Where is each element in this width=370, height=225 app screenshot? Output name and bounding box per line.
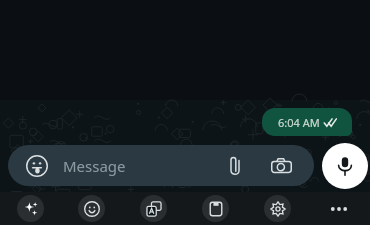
button[interactable]: Settings [246,192,308,225]
button[interactable]: 6:04 AM [262,108,352,136]
button[interactable]: Emoji and stickers [16,145,57,186]
button[interactable]: Clipboard [184,192,246,225]
button[interactable]: AI [0,192,61,225]
button[interactable]: Camera [262,147,300,185]
staticText: Message [63,156,126,176]
button[interactable]: Stickers [61,192,122,225]
button[interactable]: More options [308,192,370,225]
staticText: 6:04 AM [278,115,320,130]
button[interactable]: Emoji and stickers [8,145,314,186]
button[interactable]: Translate [122,192,184,225]
button[interactable]: Voice message [322,143,368,189]
button[interactable]: Attach [216,147,254,185]
